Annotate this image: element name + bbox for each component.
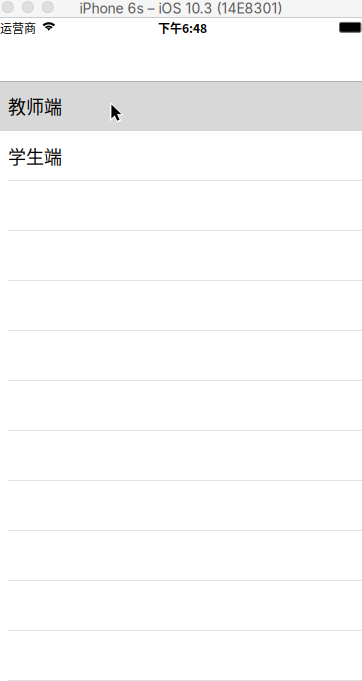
- staticText: 下午6:48: [158, 19, 207, 36]
- button[interactable]: Close window: [2, 2, 13, 12]
- button[interactable]: Minimise window: [22, 2, 33, 12]
- button[interactable]: 教师端: [0, 81, 362, 131]
- staticText: 学生端: [8, 143, 62, 169]
- staticText: 教师端: [8, 93, 62, 119]
- button[interactable]: Zoom window: [42, 2, 53, 12]
- staticText: iPhone 6s – iOS 10.3 (14E8301): [79, 0, 282, 17]
- staticText: 运营商: [0, 19, 36, 36]
- button[interactable]: 学生端: [0, 131, 362, 181]
